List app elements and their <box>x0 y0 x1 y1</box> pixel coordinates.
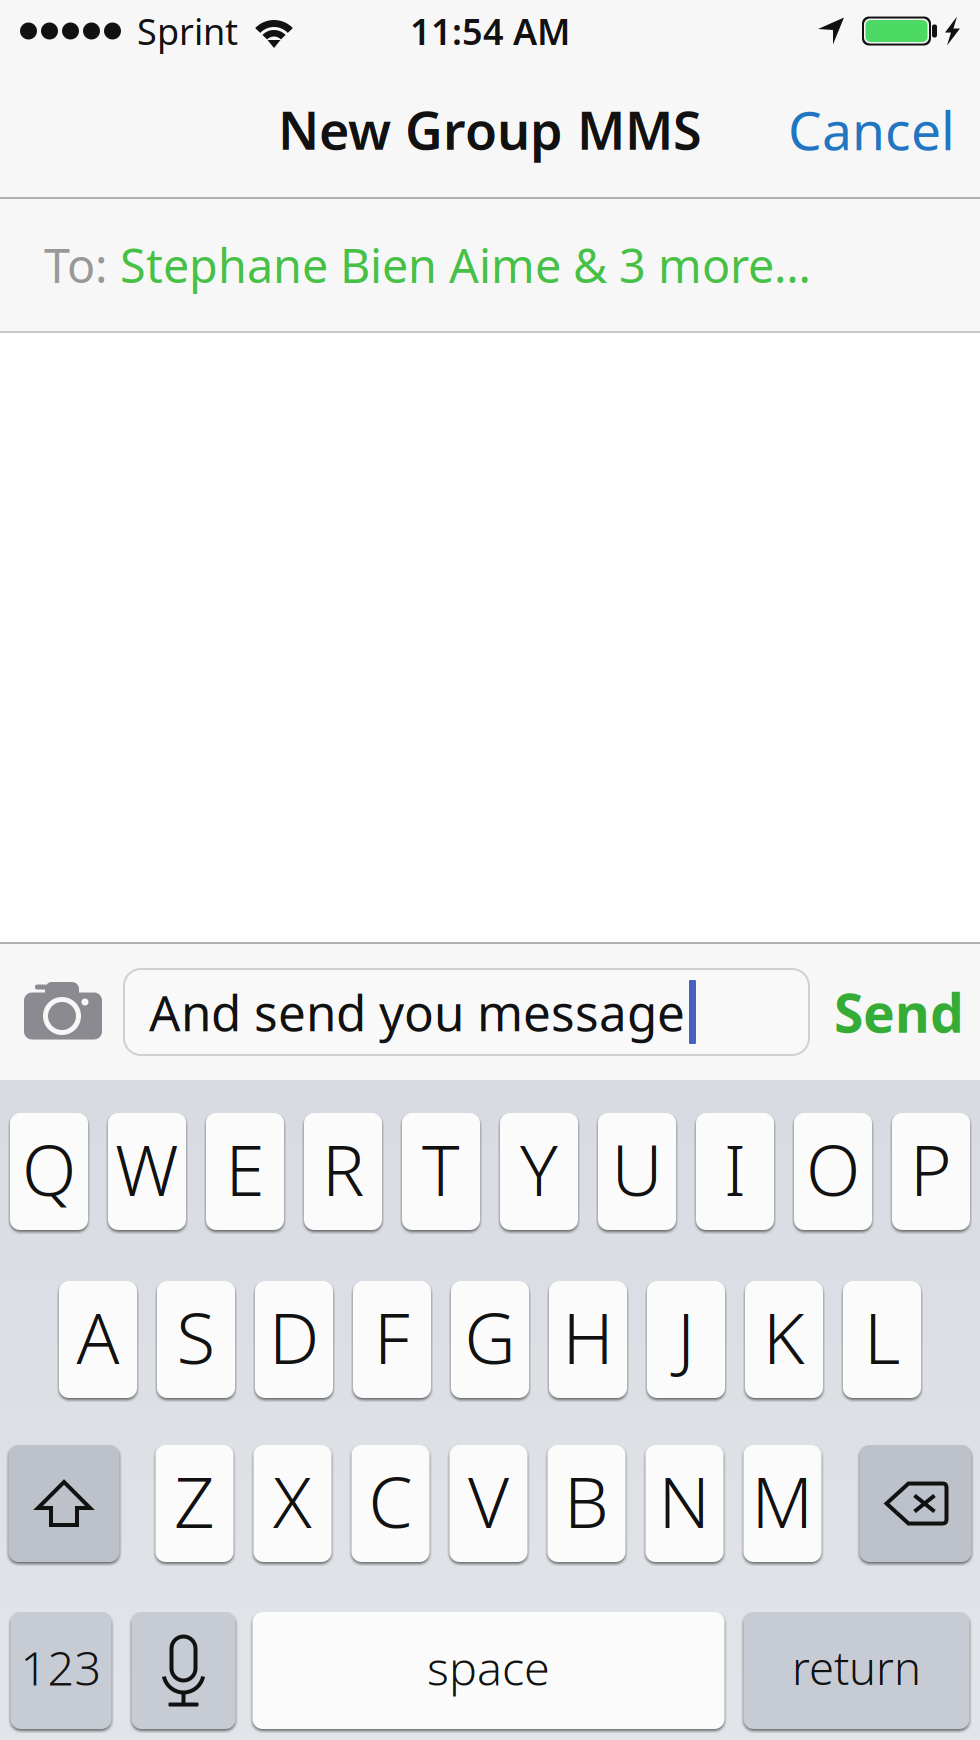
staticText: U <box>611 1122 662 1215</box>
button[interactable]: Shift <box>8 1445 119 1562</box>
staticText: S <box>176 1290 215 1383</box>
button[interactable]: space <box>252 1612 724 1729</box>
staticText: P <box>910 1122 952 1215</box>
staticText: To: <box>44 234 108 296</box>
button[interactable]: W <box>108 1113 186 1230</box>
button[interactable]: Q <box>10 1113 88 1230</box>
staticText: H <box>562 1290 613 1383</box>
button[interactable]: U <box>598 1113 676 1230</box>
button[interactable]: V <box>449 1445 527 1562</box>
staticText: 11:54 AM <box>410 7 570 55</box>
button[interactable]: Y <box>500 1113 578 1230</box>
staticText: space <box>427 1636 550 1698</box>
button[interactable]: To: <box>0 199 980 331</box>
button[interactable]: B <box>547 1445 625 1562</box>
button[interactable]: Dictate <box>131 1612 235 1729</box>
staticText: Stephane Bien Aime & 3 more… <box>108 234 811 296</box>
staticText: O <box>806 1122 860 1215</box>
button[interactable]: R <box>304 1113 382 1230</box>
button[interactable]: 123 <box>10 1612 111 1729</box>
button[interactable]: N <box>645 1445 723 1562</box>
button[interactable]: M <box>743 1445 821 1562</box>
staticText: J <box>677 1290 695 1383</box>
staticText: return <box>792 1637 921 1698</box>
staticText: W <box>115 1122 179 1215</box>
staticText: G <box>464 1290 515 1383</box>
staticText: T <box>422 1122 460 1215</box>
button[interactable]: I <box>696 1113 774 1230</box>
button[interactable]: D <box>255 1281 333 1398</box>
button[interactable]: X <box>253 1445 331 1562</box>
staticText: Y <box>520 1122 558 1215</box>
button[interactable]: P <box>892 1113 970 1230</box>
staticText: M <box>751 1454 813 1547</box>
staticText: K <box>763 1290 805 1383</box>
staticText: Q <box>22 1122 76 1215</box>
button[interactable]: Take photo <box>24 984 102 1040</box>
button[interactable]: S <box>157 1281 235 1398</box>
staticText: I <box>724 1122 746 1215</box>
staticText: Send <box>834 977 964 1047</box>
staticText: X <box>273 1454 312 1547</box>
staticText: B <box>564 1454 609 1547</box>
staticText: L <box>864 1290 900 1383</box>
button[interactable]: G <box>451 1281 529 1398</box>
staticText: 123 <box>20 1636 101 1698</box>
button[interactable]: L <box>843 1281 921 1398</box>
staticText: New Group MMS <box>278 95 702 164</box>
button[interactable]: H <box>549 1281 627 1398</box>
staticText: N <box>658 1454 710 1547</box>
button[interactable]: Delete <box>859 1445 971 1562</box>
button[interactable]: Send <box>834 959 964 1065</box>
button[interactable]: C <box>351 1445 429 1562</box>
button[interactable]: F <box>353 1281 431 1398</box>
staticText: And send you message <box>149 979 685 1045</box>
button[interactable]: O <box>794 1113 872 1230</box>
staticText: A <box>76 1290 119 1383</box>
staticText: V <box>468 1454 509 1547</box>
button[interactable]: E <box>206 1113 284 1230</box>
staticText: C <box>368 1454 412 1547</box>
button[interactable]: T <box>402 1113 480 1230</box>
staticText: E <box>225 1122 264 1215</box>
button[interactable]: A <box>59 1281 137 1398</box>
button[interactable]: return <box>743 1612 969 1729</box>
button[interactable]: K <box>745 1281 823 1398</box>
button[interactable]: Cancel <box>764 72 980 187</box>
staticText: Cancel <box>788 94 955 165</box>
button[interactable]: J <box>647 1281 725 1398</box>
staticText: F <box>374 1290 410 1383</box>
staticText: Sprint <box>137 7 238 55</box>
staticText: Z <box>174 1454 215 1547</box>
button[interactable]: Z <box>155 1445 233 1562</box>
staticText: R <box>322 1122 364 1215</box>
staticText: D <box>269 1290 319 1383</box>
